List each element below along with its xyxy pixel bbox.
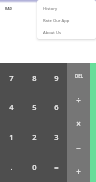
button[interactable]: Multiply [67, 110, 90, 134]
button[interactable]: 8 [23, 63, 45, 92]
staticText: 0 [32, 162, 37, 172]
staticText: . [10, 162, 13, 172]
button[interactable]: 2 [23, 122, 45, 152]
button[interactable]: History [37, 3, 96, 15]
staticText: 8 [32, 73, 37, 83]
staticText: Rate Our App [43, 18, 70, 24]
staticText: ÷ [76, 94, 81, 105]
staticText: 9 [54, 73, 59, 83]
button[interactable]: Divide [67, 86, 90, 110]
button[interactable]: 9 [45, 63, 67, 92]
button[interactable]: Plus [67, 158, 90, 182]
button[interactable]: 3 [45, 122, 67, 152]
staticText: DEL [75, 73, 83, 79]
button[interactable]: 1 [0, 122, 23, 152]
button[interactable]: Minus [67, 134, 90, 158]
button[interactable]: Rate Our App [37, 15, 96, 27]
staticText: 3 [54, 132, 59, 142]
button[interactable]: 7 [0, 63, 23, 92]
staticText: + [76, 166, 81, 177]
button[interactable]: 0 [23, 152, 45, 182]
staticText: 6 [54, 102, 59, 112]
staticText: History [43, 6, 58, 12]
staticText: 2 [32, 132, 37, 142]
staticText: 4 [9, 102, 14, 112]
staticText: About Us [43, 30, 62, 36]
staticText: 1 [9, 132, 14, 142]
button[interactable]: About Us [37, 27, 96, 39]
staticText: 5 [32, 102, 37, 112]
staticText: − [76, 142, 81, 153]
button[interactable]: = [45, 152, 67, 182]
button[interactable]: Delete [67, 63, 90, 86]
staticText: = [54, 162, 59, 172]
staticText: × [76, 118, 81, 129]
button[interactable]: 4 [0, 92, 23, 122]
button[interactable]: 6 [45, 92, 67, 122]
button[interactable]: . [0, 152, 23, 182]
staticText: 7 [9, 73, 14, 83]
staticText: RAD [5, 6, 13, 11]
button[interactable]: 5 [23, 92, 45, 122]
